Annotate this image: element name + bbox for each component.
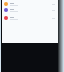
- button[interactable]: [2, 7, 58, 13]
- button[interactable]: [2, 1, 58, 7]
- button[interactable]: [2, 15, 58, 21]
